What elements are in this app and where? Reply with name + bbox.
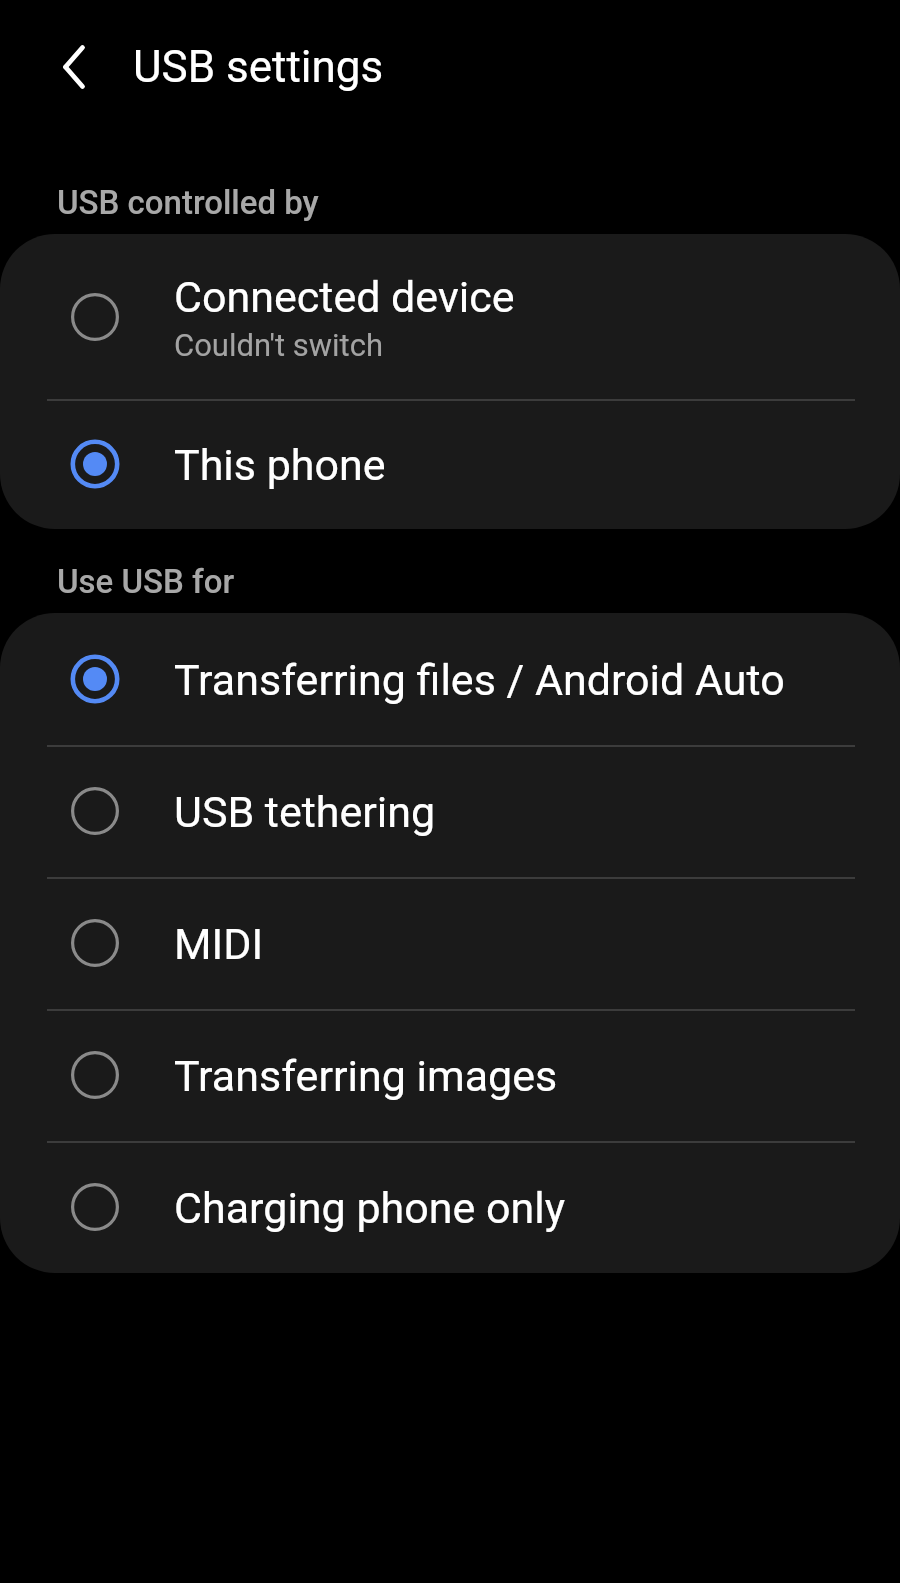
button[interactable]: Transferring images xyxy=(0,1009,900,1141)
button[interactable]: Transferring files / Android Auto xyxy=(0,613,900,745)
staticText: Transferring files / Android Auto xyxy=(174,655,785,705)
button[interactable]: USB tethering xyxy=(0,745,900,877)
staticText: Transferring images xyxy=(174,1051,558,1101)
staticText: Connected device xyxy=(174,272,515,322)
staticText: Couldn't switch xyxy=(174,327,384,363)
staticText: This phone xyxy=(174,440,386,490)
button[interactable]: This phone xyxy=(0,399,900,529)
button[interactable]: MIDI xyxy=(0,877,900,1009)
button[interactable]: Back xyxy=(0,0,148,134)
button[interactable]: Charging phone only xyxy=(0,1141,900,1273)
staticText: Charging phone only xyxy=(174,1183,566,1233)
staticText: USB settings xyxy=(133,41,384,93)
staticText: USB tethering xyxy=(174,787,436,837)
staticText: USB controlled by xyxy=(57,183,319,222)
staticText: Use USB for xyxy=(57,562,235,601)
staticText: MIDI xyxy=(174,919,264,969)
button[interactable]: Connected device xyxy=(0,234,900,399)
